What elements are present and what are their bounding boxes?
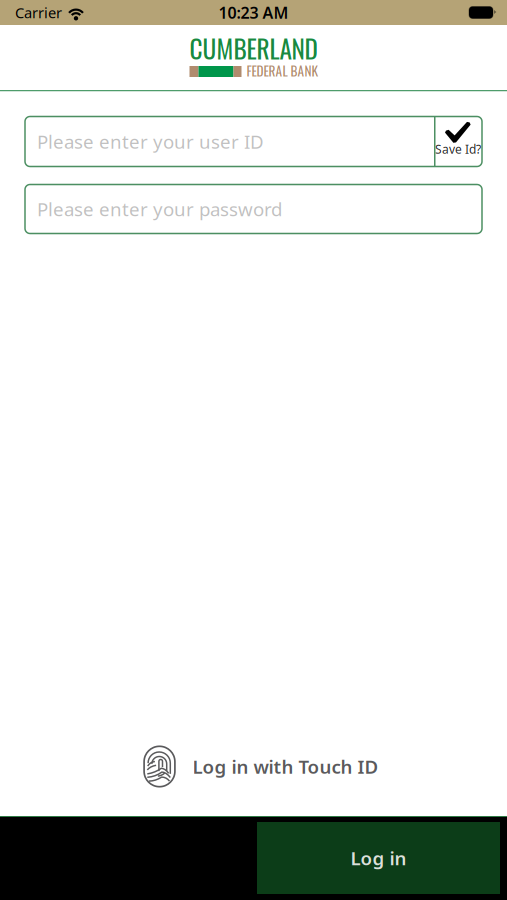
button[interactable]: Log in [257, 822, 500, 894]
staticText: Please enter your user ID [37, 129, 264, 154]
staticText: Log in with Touch ID [192, 754, 378, 779]
staticText: Log in [350, 846, 406, 870]
button[interactable]: Save Id? [434, 117, 482, 166]
button[interactable]: Log in with Touch ID [127, 741, 379, 792]
button[interactable]: Please enter your password [25, 184, 482, 233]
staticText: Save Id? [435, 141, 481, 157]
button[interactable]: Please enter your user ID [25, 116, 434, 166]
staticText: Carrier [15, 3, 62, 22]
staticText: 10:23 AM [218, 2, 288, 23]
staticText: FEDERAL BANK [246, 61, 318, 80]
staticText: Please enter your password [37, 197, 282, 221]
staticText: CUMBERLAND [189, 29, 317, 67]
